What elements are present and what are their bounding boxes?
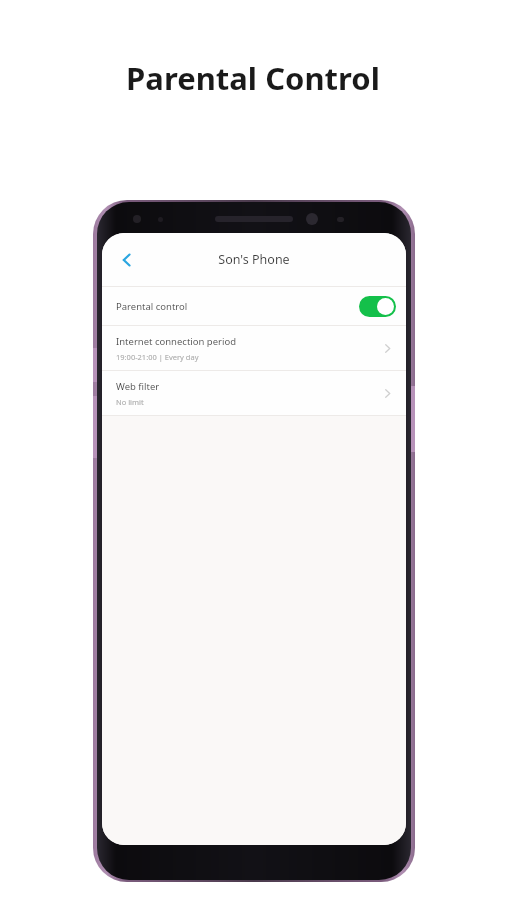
staticText: Parental control [116, 300, 188, 313]
button[interactable]: Web filter [102, 371, 406, 415]
staticText: Parental Control [0, 57, 506, 99]
button[interactable]: Back [110, 243, 144, 277]
staticText: Son's Phone [102, 251, 406, 268]
button[interactable]: Parental control toggle [359, 296, 396, 317]
button[interactable]: Parental control [102, 287, 406, 325]
button[interactable]: Internet connection period [102, 326, 406, 370]
staticText: 19:00-21:00 | Every day [116, 352, 199, 362]
staticText: Internet connection period [116, 335, 237, 348]
staticText: Web filter [116, 380, 160, 393]
staticText: No limit [116, 397, 144, 407]
